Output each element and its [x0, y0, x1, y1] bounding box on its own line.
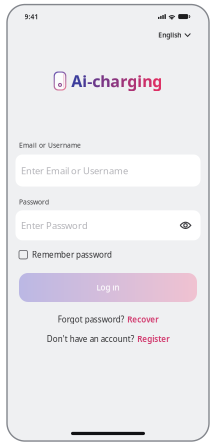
staticText: i: [82, 70, 87, 92]
staticText: h: [100, 70, 110, 92]
staticText: Log in: [96, 282, 119, 293]
staticText: Enter Email or Username: [21, 164, 128, 177]
staticText: 9:41: [24, 12, 38, 21]
staticText: Forgot password?: [58, 314, 124, 325]
button[interactable]: Remember password: [7, 240, 112, 262]
staticText: A: [71, 70, 82, 92]
staticText: Password: [19, 197, 49, 206]
staticText: -: [87, 70, 92, 92]
staticText: Remember password: [32, 249, 112, 260]
staticText: Enter Password: [21, 219, 88, 232]
staticText: Email or Username: [19, 141, 81, 150]
button[interactable]: English: [158, 21, 209, 41]
staticText: n: [142, 70, 152, 92]
button[interactable]: Recover: [127, 314, 158, 325]
staticText: a: [110, 70, 120, 92]
staticText: Register: [137, 334, 169, 344]
button[interactable]: Show password: [179, 211, 200, 239]
staticText: Recover: [127, 314, 158, 325]
staticText: Don't have an account?: [47, 334, 134, 344]
button[interactable]: Register: [137, 334, 169, 344]
staticText: g: [152, 70, 162, 92]
button[interactable]: Log in: [7, 273, 209, 302]
staticText: English: [158, 31, 181, 39]
staticText: i: [137, 70, 142, 92]
staticText: g: [127, 70, 137, 92]
staticText: r: [120, 70, 127, 92]
staticText: c: [92, 70, 100, 92]
